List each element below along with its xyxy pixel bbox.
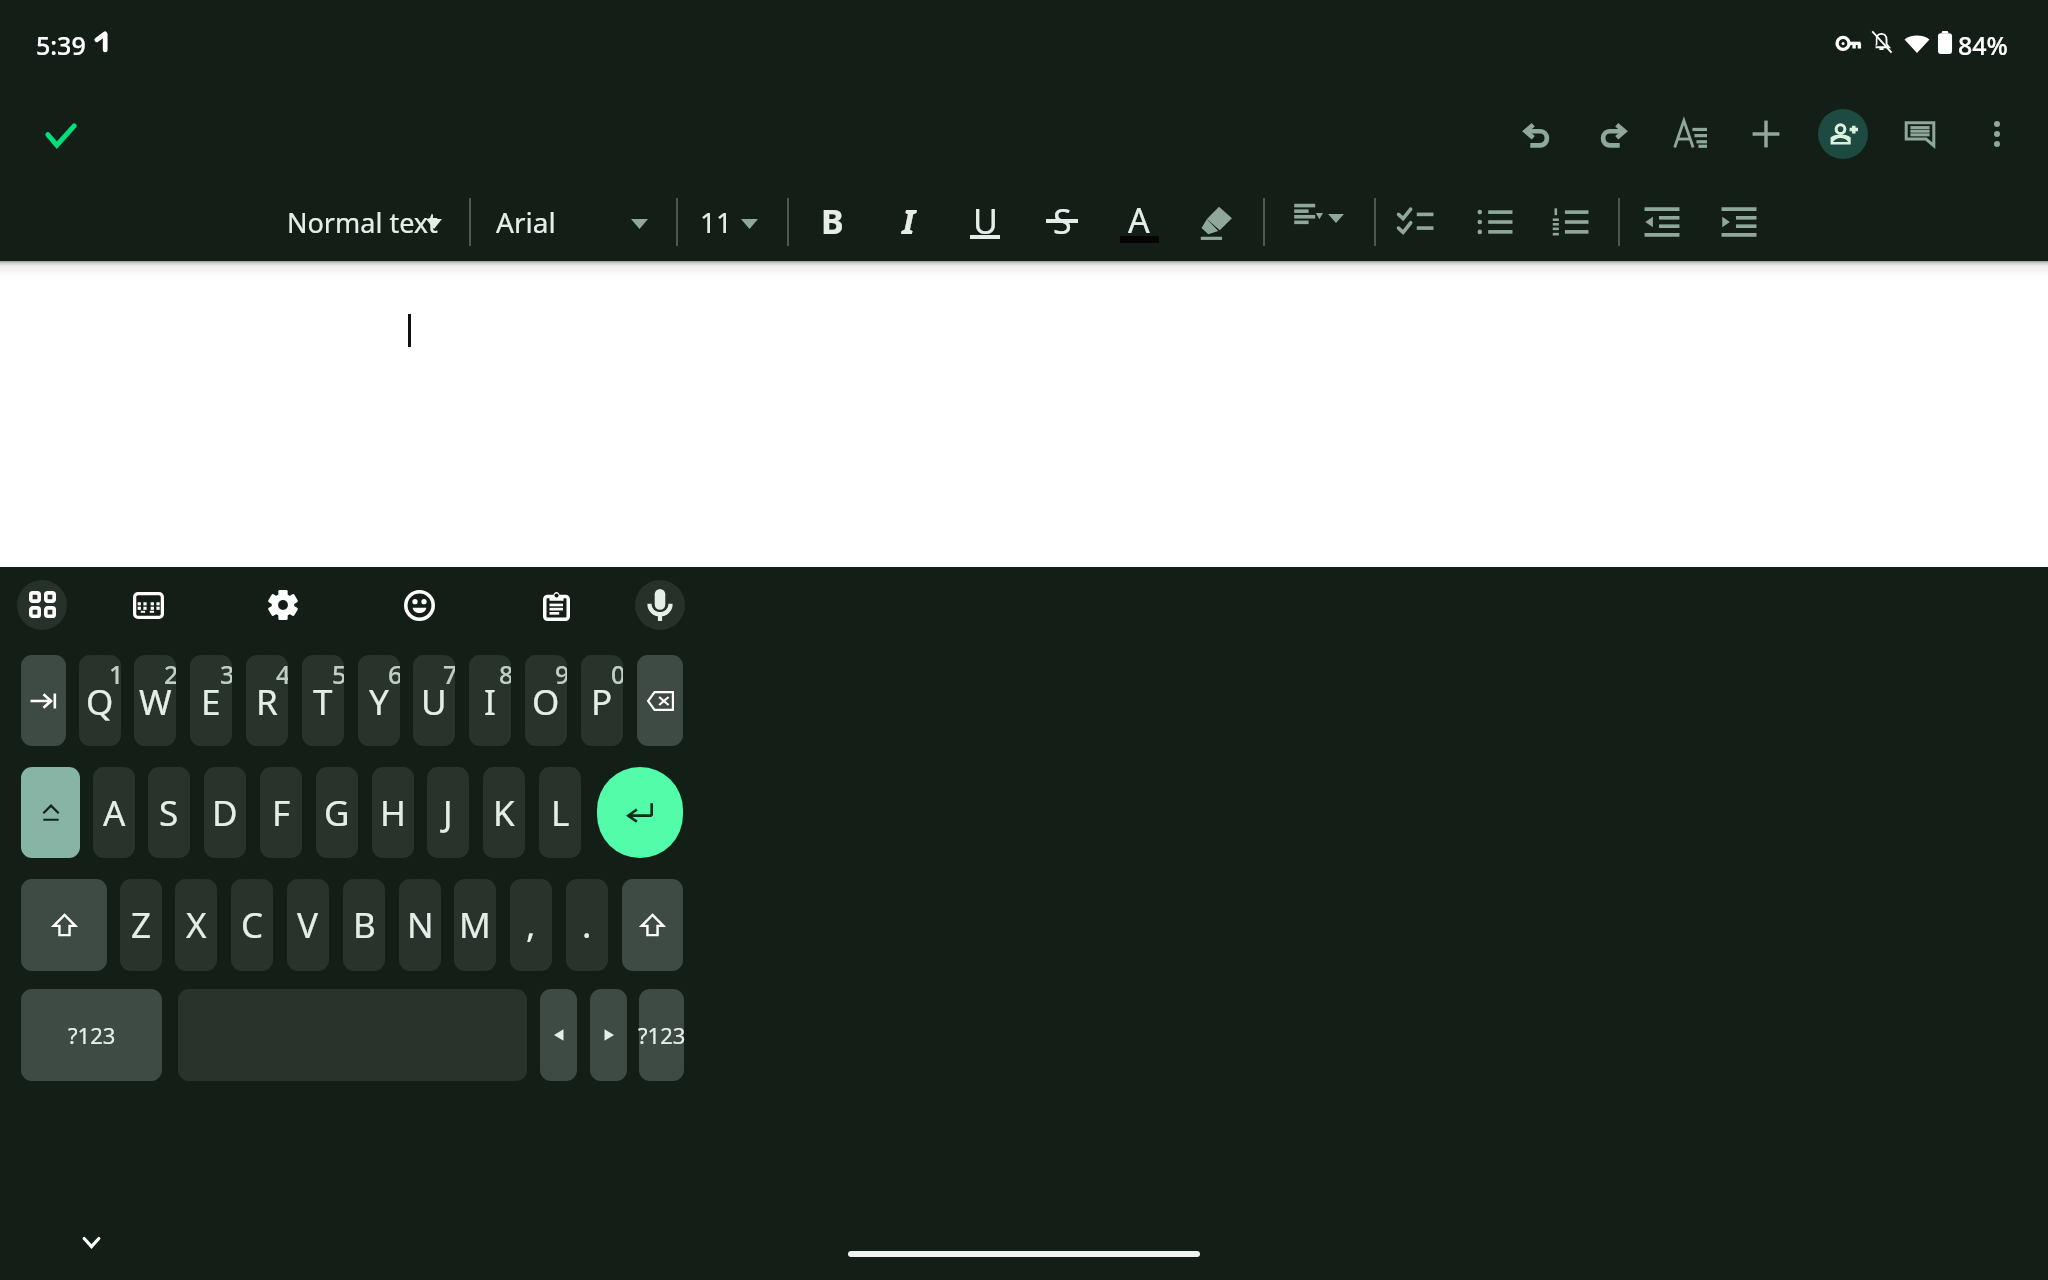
staticText: 6 (388, 657, 400, 691)
button[interactable]: Redo (1583, 104, 1643, 164)
button[interactable]: Voice input (635, 580, 685, 630)
button[interactable]: A (93, 767, 135, 858)
staticText: X (186, 901, 207, 949)
button[interactable] (21, 879, 107, 971)
button[interactable] (21, 655, 66, 746)
staticText: E (201, 678, 221, 726)
button[interactable]: Strikethrough (1034, 193, 1090, 249)
button[interactable]: J (427, 767, 469, 858)
button[interactable]: 5 (302, 655, 344, 746)
button[interactable]: 1 (79, 655, 121, 746)
button[interactable]: 8 (469, 655, 511, 746)
staticText: S (1053, 198, 1072, 244)
staticText: O (532, 678, 560, 726)
button[interactable]: Apps (17, 580, 67, 630)
staticText: 2 (164, 657, 176, 691)
staticText: A (103, 789, 126, 837)
button[interactable]: Checklist (1388, 194, 1444, 250)
button[interactable]: Comments (1890, 104, 1950, 164)
staticText: S (159, 789, 179, 837)
button[interactable]: 11 (700, 194, 770, 250)
button[interactable]: C (231, 879, 273, 971)
staticText: Normal text (287, 204, 438, 241)
button[interactable]: Numbered list (1543, 194, 1599, 250)
staticText: M (459, 901, 491, 949)
button[interactable] (639, 989, 684, 1081)
staticText: 5:39 (36, 28, 86, 62)
staticText: A (1128, 197, 1150, 243)
button[interactable]: S (148, 767, 190, 858)
button[interactable]: Align (1288, 194, 1348, 250)
button[interactable]: Bold (804, 193, 860, 249)
button[interactable]: G (316, 767, 358, 858)
button[interactable]: Normal text (287, 194, 457, 250)
button[interactable]: , (510, 879, 552, 971)
staticText: U (421, 678, 447, 726)
button[interactable]: Bulleted list (1467, 194, 1523, 250)
staticText: I (902, 198, 916, 244)
button[interactable]: Z (120, 879, 162, 971)
button[interactable]: Settings (258, 580, 308, 630)
button[interactable] (590, 989, 627, 1081)
button[interactable] (637, 655, 683, 746)
button[interactable]: F (260, 767, 302, 858)
staticText: 1 (109, 657, 121, 691)
staticText: B (821, 198, 844, 244)
button[interactable] (622, 879, 683, 971)
button[interactable]: Arial (496, 194, 646, 250)
staticText: F (272, 789, 291, 837)
staticText: 11 (700, 203, 733, 241)
button[interactable]: Undo (1506, 104, 1566, 164)
button[interactable] (540, 989, 577, 1081)
staticText: G (324, 789, 350, 837)
button[interactable]: Keyboard (123, 580, 173, 630)
button[interactable]: 4 (246, 655, 288, 746)
button[interactable]: Done (31, 105, 91, 165)
button[interactable]: H (372, 767, 414, 858)
button[interactable]: Hide keyboard (63, 1214, 119, 1270)
button[interactable]: D (204, 767, 246, 858)
button[interactable]: Emoji (394, 580, 444, 630)
staticText: W (139, 678, 172, 726)
button[interactable]: Insert (1736, 104, 1796, 164)
staticText: L (551, 789, 570, 837)
button[interactable] (21, 767, 80, 858)
button[interactable]: 3 (190, 655, 232, 746)
button[interactable]: . (566, 879, 608, 971)
button[interactable]: L (539, 767, 581, 858)
button[interactable]: Increase indent (1711, 194, 1767, 250)
staticText: I (484, 678, 496, 726)
button[interactable]: Enter (597, 767, 683, 858)
staticText: 0 (611, 657, 623, 691)
staticText: . (582, 901, 592, 949)
button[interactable]: Clipboard (531, 580, 581, 630)
button[interactable]: V (287, 879, 329, 971)
button[interactable]: Italic (881, 193, 937, 249)
staticText: 5 (332, 657, 344, 691)
button[interactable]: 6 (358, 655, 400, 746)
staticText: N (407, 901, 434, 949)
button[interactable]: 0 (581, 655, 623, 746)
staticText: 9 (555, 657, 567, 691)
button[interactable]: Text colour (1111, 192, 1167, 248)
button[interactable]: M (454, 879, 496, 971)
button[interactable]: 7 (413, 655, 455, 746)
button[interactable]: N (399, 879, 441, 971)
button[interactable]: 9 (525, 655, 567, 746)
staticText: Z (131, 901, 152, 949)
button[interactable]: Decrease indent (1634, 194, 1690, 250)
button[interactable]: Share (1818, 109, 1868, 159)
button[interactable]: B (343, 879, 385, 971)
button[interactable]: K (483, 767, 525, 858)
button[interactable]: 2 (134, 655, 176, 746)
button[interactable]: X (175, 879, 217, 971)
button[interactable]: Text formatting (1660, 104, 1720, 164)
staticText: T (313, 678, 333, 726)
button[interactable]: Underline (957, 193, 1013, 249)
button[interactable]: ?123 (21, 989, 162, 1081)
button[interactable]: Highlight (1188, 194, 1244, 250)
staticText: H (380, 789, 406, 837)
button[interactable]: More options (1967, 104, 2027, 164)
staticText: R (256, 678, 278, 726)
